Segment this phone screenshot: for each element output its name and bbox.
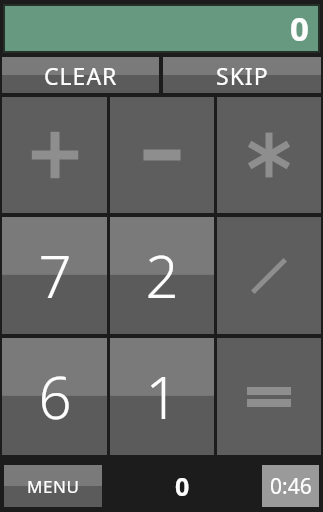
button[interactable]: Plus (2, 97, 107, 213)
staticText: 6 (38, 357, 72, 436)
button[interactable]: Multiply (217, 97, 321, 213)
button[interactable]: 6 (2, 338, 107, 455)
button[interactable]: CLEAR (2, 57, 159, 93)
button[interactable]: Minus (110, 97, 214, 213)
staticText: CLEAR (44, 60, 118, 91)
staticText: MENU (27, 475, 80, 498)
button[interactable]: 7 (2, 217, 107, 334)
staticText: 0:46 (270, 472, 312, 501)
staticText: SKIP (216, 60, 269, 91)
button[interactable]: 1 (110, 338, 214, 455)
button[interactable]: SKIP (163, 57, 321, 93)
staticText: 2 (145, 236, 179, 315)
button[interactable]: 2 (110, 217, 214, 334)
staticText: 1 (145, 357, 179, 436)
button[interactable]: Equals (217, 338, 321, 455)
staticText: 0 (290, 6, 309, 49)
staticText: 7 (38, 236, 72, 315)
button[interactable]: MENU (4, 465, 102, 507)
button[interactable]: Divide (217, 217, 321, 334)
staticText: 0 (175, 469, 190, 503)
